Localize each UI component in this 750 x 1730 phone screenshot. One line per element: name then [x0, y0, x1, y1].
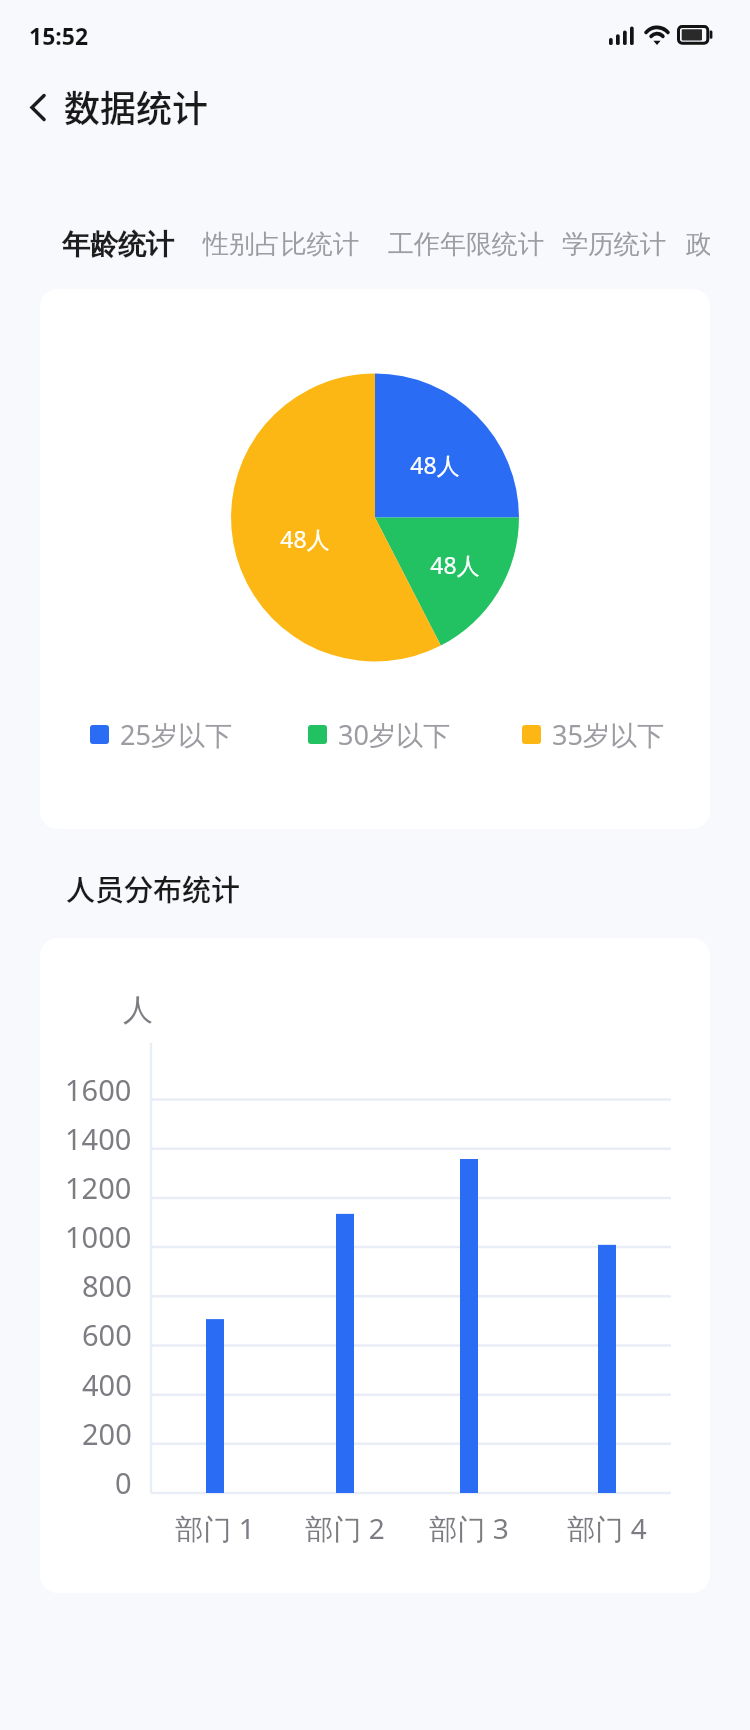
staticText: 政治面貌统计	[686, 228, 710, 261]
button[interactable]: 25岁以下	[90, 714, 232, 754]
staticText: 0	[115, 1463, 132, 1502]
staticText: 部门 2	[305, 1509, 385, 1547]
staticText: 数据统计	[64, 80, 209, 132]
button[interactable]: 35岁以下	[522, 714, 664, 754]
staticText: 部门 4	[567, 1509, 647, 1547]
staticText: 1000	[65, 1217, 132, 1256]
staticText: 600	[82, 1315, 132, 1354]
staticText: 200	[82, 1414, 132, 1453]
staticText: 1200	[65, 1168, 132, 1207]
staticText: 48人	[430, 549, 480, 580]
button[interactable]: 性别占比统计	[203, 217, 359, 271]
staticText: 400	[82, 1365, 132, 1404]
staticText: 15:52	[29, 20, 89, 51]
button[interactable]: 工作年限统计	[388, 217, 544, 271]
button[interactable]: 学历统计	[562, 217, 666, 271]
staticText: 1600	[65, 1070, 132, 1109]
staticText: 人员分布统计	[66, 867, 241, 909]
staticText: 800	[82, 1266, 132, 1305]
staticText: 部门 1	[175, 1509, 255, 1547]
staticText: 工作年限统计	[388, 228, 544, 261]
staticText: 性别占比统计	[203, 228, 359, 261]
staticText: 人	[123, 991, 153, 1029]
staticText: 25岁以下	[120, 716, 232, 753]
button[interactable]: 30岁以下	[308, 714, 450, 754]
staticText: 48人	[410, 449, 460, 480]
staticText: 部门 3	[429, 1509, 509, 1547]
staticText: 48人	[280, 523, 330, 554]
staticText: 学历统计	[562, 228, 666, 261]
staticText: 年龄统计	[62, 227, 174, 262]
button[interactable]: 政治面貌统计	[686, 217, 710, 271]
staticText: 35岁以下	[552, 716, 664, 753]
button[interactable]: 年龄统计	[62, 217, 174, 271]
button[interactable]: 返回	[8, 78, 68, 136]
staticText: 1400	[65, 1119, 132, 1158]
staticText: 30岁以下	[338, 716, 450, 753]
